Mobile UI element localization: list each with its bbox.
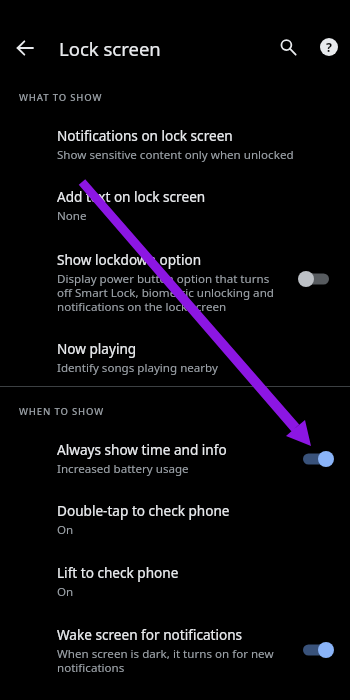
staticText: Lift to check phone: [57, 563, 179, 582]
staticText: WHEN TO SHOW: [19, 405, 105, 418]
staticText: Show sensitive content only when unlocke…: [57, 147, 294, 163]
button[interactable]: Search: [270, 29, 306, 65]
button[interactable]: Help: [311, 29, 347, 65]
button[interactable]: Toggle on: [294, 446, 338, 472]
button[interactable]: Back: [7, 30, 43, 66]
staticText: Wake screen for notifications: [57, 625, 243, 644]
button[interactable]: Toggle off: [294, 266, 338, 292]
button[interactable]: Now playing: [0, 327, 350, 386]
staticText: None: [57, 208, 87, 224]
button[interactable]: Double-tap to check phone: [0, 489, 350, 550]
staticText: Show lockdown option: [57, 250, 202, 269]
staticText: Notifications on lock screen: [57, 126, 233, 145]
button[interactable]: Wake screen for notifications: [0, 612, 350, 687]
button[interactable]: Show lockdown option: [0, 237, 350, 327]
staticText: WHAT TO SHOW: [19, 91, 103, 104]
staticText: On: [57, 584, 74, 600]
staticText: ?: [326, 39, 332, 56]
button[interactable]: Add text on lock screen: [0, 175, 350, 237]
staticText: Identify songs playing nearby: [57, 360, 218, 376]
staticText: Increased battery usage: [57, 461, 189, 477]
staticText: Always show time and info: [57, 440, 227, 459]
staticText: Add text on lock screen: [57, 187, 206, 206]
staticText: On: [57, 522, 74, 538]
button[interactable]: Notifications on lock screen: [0, 126, 350, 175]
button[interactable]: Lift to check phone: [0, 550, 350, 612]
staticText: Now playing: [57, 339, 137, 358]
staticText: Double-tap to check phone: [57, 501, 230, 520]
staticText: When screen is dark, it turns on for new…: [57, 646, 288, 675]
staticText: Lock screen: [59, 36, 161, 61]
button[interactable]: Toggle on: [294, 637, 338, 663]
button[interactable]: Always show time and info: [0, 440, 350, 489]
staticText: Display power button option that turns o…: [57, 271, 277, 314]
